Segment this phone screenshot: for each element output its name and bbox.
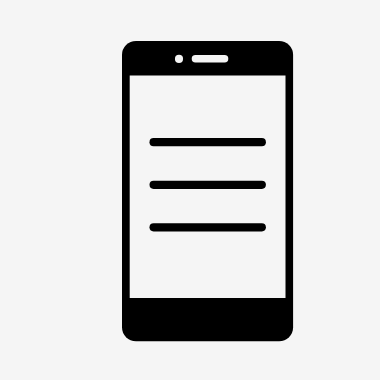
button[interactable]: Smartphone showing a menu list xyxy=(0,0,380,380)
